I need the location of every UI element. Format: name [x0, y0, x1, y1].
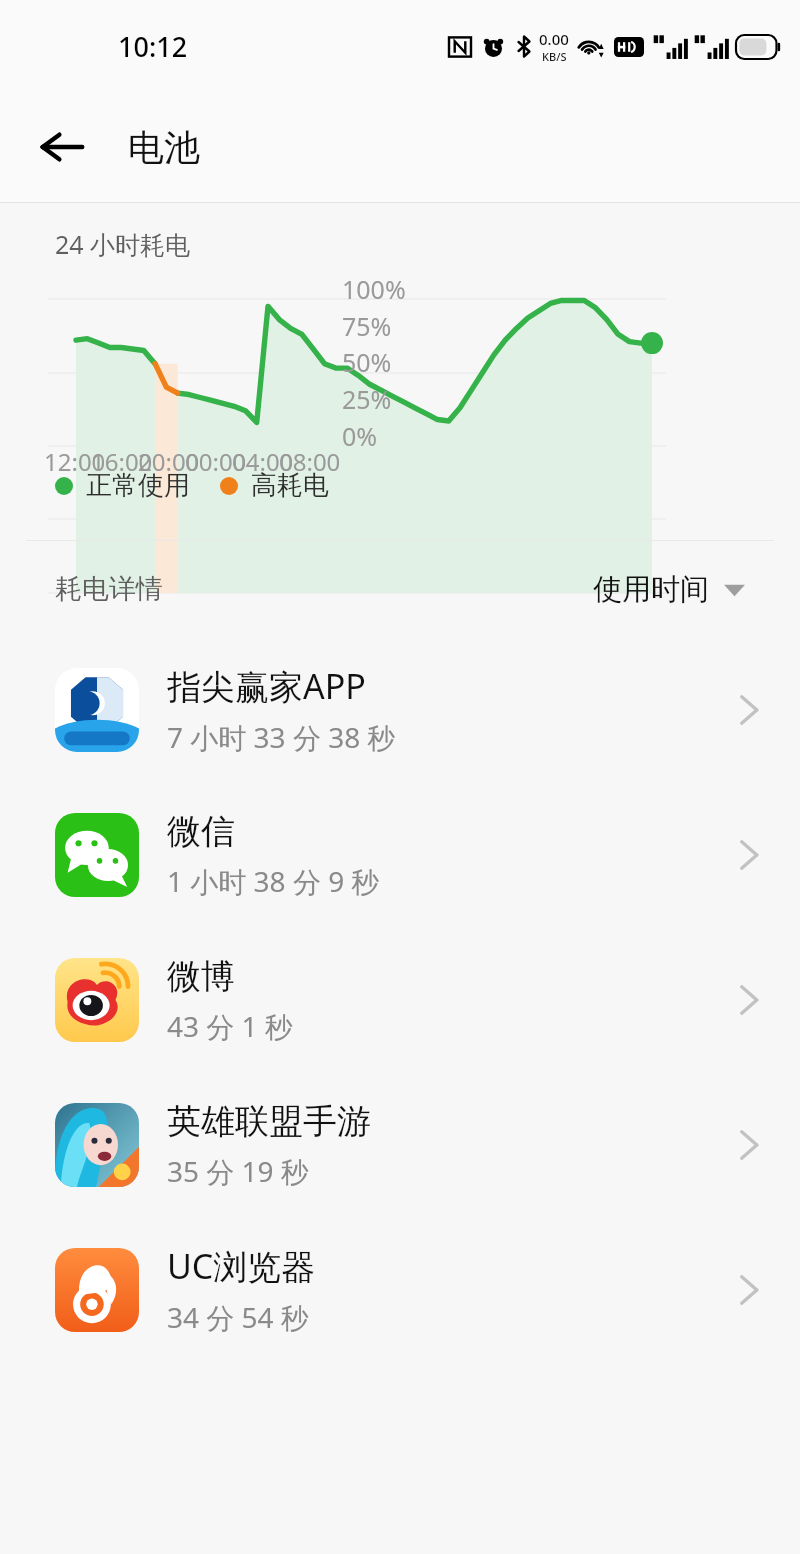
staticText: 34 分 54 秒 [167, 1298, 309, 1336]
staticText: 35 分 19 秒 [167, 1152, 309, 1190]
staticText: 24 小时耗电 [55, 227, 191, 261]
button[interactable]: UC浏览器 [0, 1217, 800, 1362]
button[interactable]: Back [30, 115, 94, 179]
staticText: 25% [342, 382, 392, 416]
staticText: 12:00 [44, 445, 106, 478]
staticText: 00:00 [185, 445, 247, 478]
button[interactable]: 微博 [0, 927, 800, 1072]
staticText: 16:00 [91, 445, 153, 478]
staticText: 正常使用 [86, 469, 190, 502]
staticText: 电池 [128, 125, 200, 170]
staticText: 43 分 1 秒 [167, 1007, 293, 1045]
button[interactable]: 使用时间 [593, 563, 745, 616]
staticText: 08:00 [279, 445, 341, 478]
staticText: 0.00 [539, 29, 569, 49]
staticText: 指尖赢家APP [167, 663, 366, 709]
staticText: 微博 [167, 955, 235, 998]
staticText: 75% [342, 309, 392, 343]
staticText: 使用时间 [593, 571, 709, 608]
staticText: 英雄联盟手游 [167, 1100, 371, 1143]
staticText: 1 小时 38 分 9 秒 [167, 862, 380, 900]
staticText: UC浏览器 [167, 1243, 316, 1289]
staticText: 50% [342, 345, 392, 379]
button[interactable]: 英雄联盟手游 [0, 1072, 800, 1217]
staticText: 04:00 [232, 445, 294, 478]
staticText: 微信 [167, 810, 235, 853]
staticText: 7 小时 33 分 38 秒 [167, 718, 396, 756]
staticText: 0% [342, 419, 378, 453]
staticText: 耗电详情 [55, 572, 163, 606]
button[interactable]: 微信 [0, 782, 800, 927]
button[interactable]: 指尖赢家APP [0, 637, 800, 782]
staticText: 20:00 [138, 445, 200, 478]
staticText: 10:12 [118, 28, 188, 65]
staticText: KB/S [542, 49, 567, 64]
staticText: 高耗电 [251, 469, 329, 502]
staticText: 100% [342, 272, 406, 306]
